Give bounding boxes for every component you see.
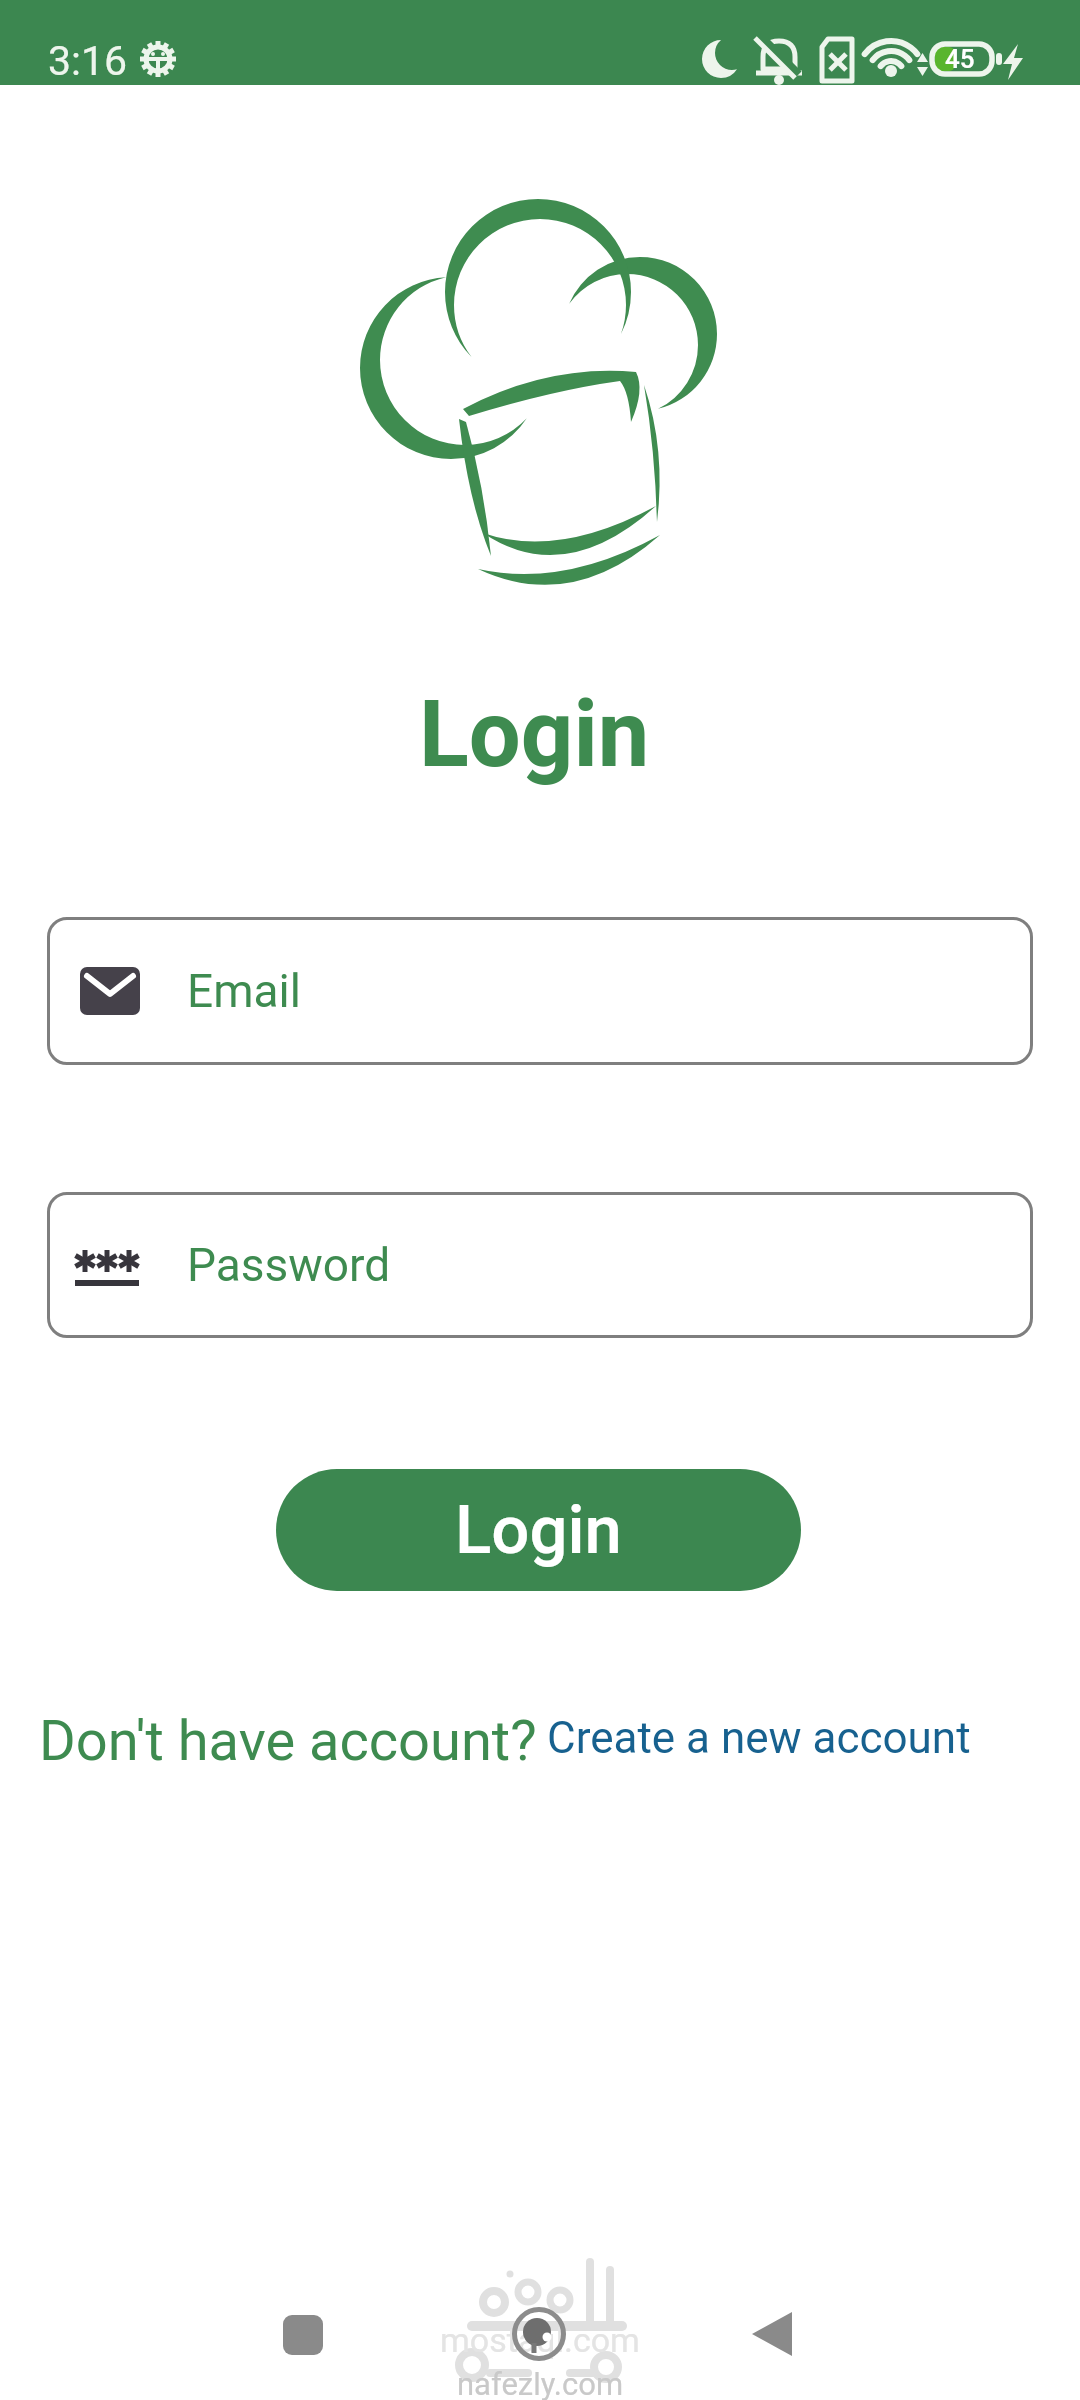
staticText: nafezly.com (457, 2366, 624, 2400)
staticText: 3:16 (48, 37, 128, 85)
staticText: 45 (945, 44, 975, 74)
button[interactable]: Login (276, 1469, 801, 1591)
button[interactable]: Password (47, 1192, 1033, 1338)
button[interactable]: Create a new account (547, 1712, 971, 1764)
staticText: Don't have account? (39, 1708, 537, 1774)
staticText: Login (419, 681, 650, 789)
staticText: mostaql.com (440, 2320, 640, 2360)
button[interactable] (283, 2315, 323, 2355)
staticText: Password (187, 1238, 391, 1292)
button[interactable] (508, 2303, 572, 2367)
button[interactable]: Email (47, 917, 1033, 1065)
button[interactable] (748, 2310, 796, 2358)
staticText: Login (455, 1491, 622, 1570)
staticText: Email (187, 964, 301, 1018)
